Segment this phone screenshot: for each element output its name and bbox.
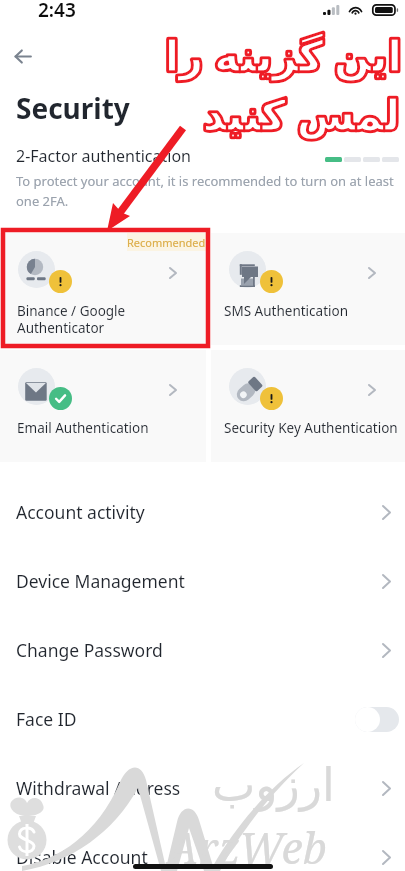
button[interactable]: Account activity [0,478,405,546]
staticText: Disable Account [16,845,148,869]
staticText: Account activity [16,500,145,524]
staticText: ArzWeb [168,818,327,871]
staticText: Recommended [127,235,206,250]
staticText: این گزینه را [160,26,402,83]
button[interactable]: Face ID [0,685,405,753]
button[interactable]: Recommended [0,233,206,345]
staticText: Security [16,89,130,127]
button[interactable]: Email Authentication [0,350,206,462]
button[interactable]: Disable Account [0,823,405,871]
button[interactable]: SMS Authentication [211,233,405,345]
button[interactable]: Withdrawal Address [0,754,405,822]
staticText: ارزوب [212,758,335,812]
staticText: لمس کنید [158,85,400,142]
staticText: Withdrawal Address [16,776,181,800]
staticText: Security Key Authentication [224,419,398,437]
button[interactable]: Change Password [0,616,405,684]
button[interactable]: Back [5,38,41,74]
staticText: لمس کنید [158,85,400,142]
staticText: 2:43 [38,0,76,23]
staticText: این گزینه را [160,26,402,83]
staticText: Device Management [16,569,185,593]
staticText: 2-Factor authentication [16,145,191,167]
staticText: Email Authentication [17,419,149,437]
staticText: To protect your account, it is recommend… [16,172,394,210]
staticText: لمس کنید [158,85,400,142]
button[interactable]: Security Key Authentication [211,350,405,462]
staticText: Change Password [16,638,163,662]
staticText: SMS Authentication [224,302,348,320]
staticText: این گزینه را [160,26,402,83]
staticText: Face ID [16,707,77,731]
button[interactable]: Device Management [0,547,405,615]
staticText: Binance / Google Authenticator [17,302,126,337]
